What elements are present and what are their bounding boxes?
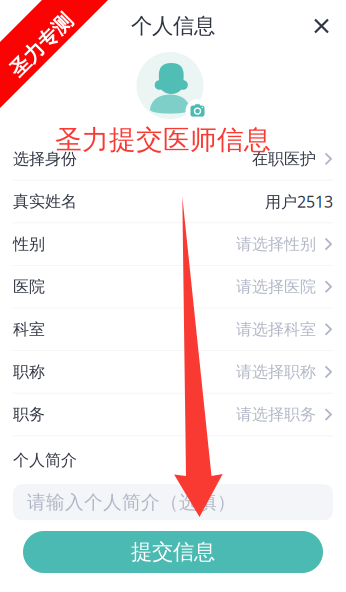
staticText: 请选择职务 <box>236 405 316 424</box>
button[interactable]: Change avatar <box>136 52 209 120</box>
button[interactable]: 科室 <box>0 308 346 351</box>
staticText: 请选择职称 <box>236 362 316 382</box>
staticText: 请选择性别 <box>236 234 316 254</box>
staticText: 性别 <box>13 234 45 254</box>
button[interactable]: 提交信息 <box>23 531 323 573</box>
button[interactable]: 选择身份 <box>0 138 346 181</box>
button[interactable]: 真实姓名 <box>0 181 346 223</box>
staticText: 真实姓名 <box>13 192 77 211</box>
staticText: 科室 <box>13 319 45 339</box>
staticText: 请选择科室 <box>236 319 316 339</box>
button[interactable]: 性别 <box>0 223 346 266</box>
staticText: 医院 <box>13 277 45 297</box>
staticText: 圣力提交医师信息 <box>55 123 271 156</box>
staticText: 个人信息 <box>131 13 215 39</box>
button[interactable]: 职称 <box>0 351 346 394</box>
button[interactable]: 请输入个人简介（选填） <box>0 484 346 520</box>
button[interactable]: 职务 <box>0 394 346 436</box>
staticText: 在职医护 <box>252 149 316 169</box>
staticText: 提交信息 <box>131 539 215 565</box>
staticText: 圣力专测 <box>1 33 81 58</box>
staticText: 职称 <box>13 362 45 382</box>
button[interactable]: 医院 <box>0 266 346 308</box>
staticText: 个人简介 <box>13 450 77 470</box>
staticText: 用户2513 <box>265 191 333 212</box>
staticText: 请输入个人简介（选填） <box>27 491 236 514</box>
staticText: 职务 <box>13 405 45 424</box>
staticText: 选择身份 <box>13 149 77 169</box>
staticText: 请选择医院 <box>236 277 316 297</box>
button[interactable]: Close <box>304 8 339 43</box>
